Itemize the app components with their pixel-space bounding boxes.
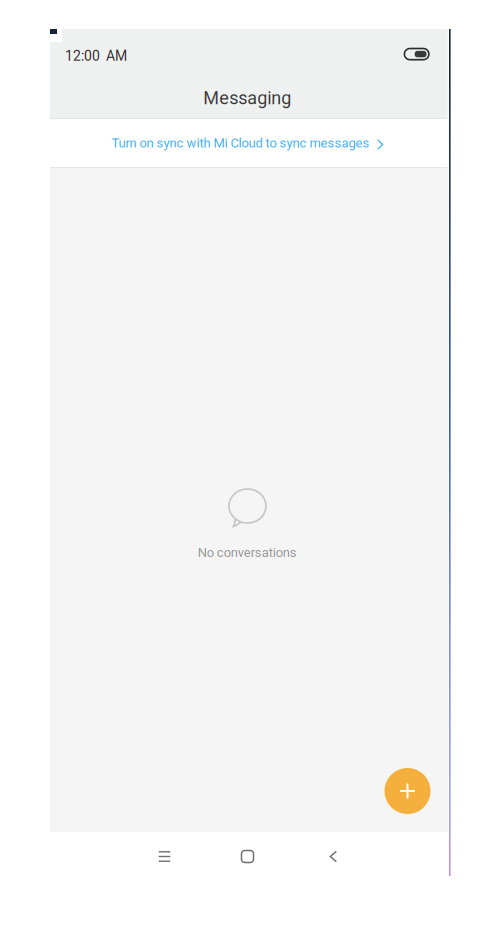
- button[interactable]: Recents: [147, 839, 181, 873]
- button[interactable]: Home: [230, 839, 264, 873]
- staticText: Turn on sync with Mi Cloud to sync messa…: [111, 135, 369, 151]
- staticText: 12:00 AM: [65, 48, 127, 64]
- staticText: No conversations: [198, 545, 297, 560]
- staticText: Messaging: [203, 87, 291, 109]
- button[interactable]: Back: [316, 839, 350, 873]
- button[interactable]: Turn on sync with Mi Cloud to sync messa…: [50, 119, 448, 167]
- button[interactable]: New message: [384, 768, 430, 814]
